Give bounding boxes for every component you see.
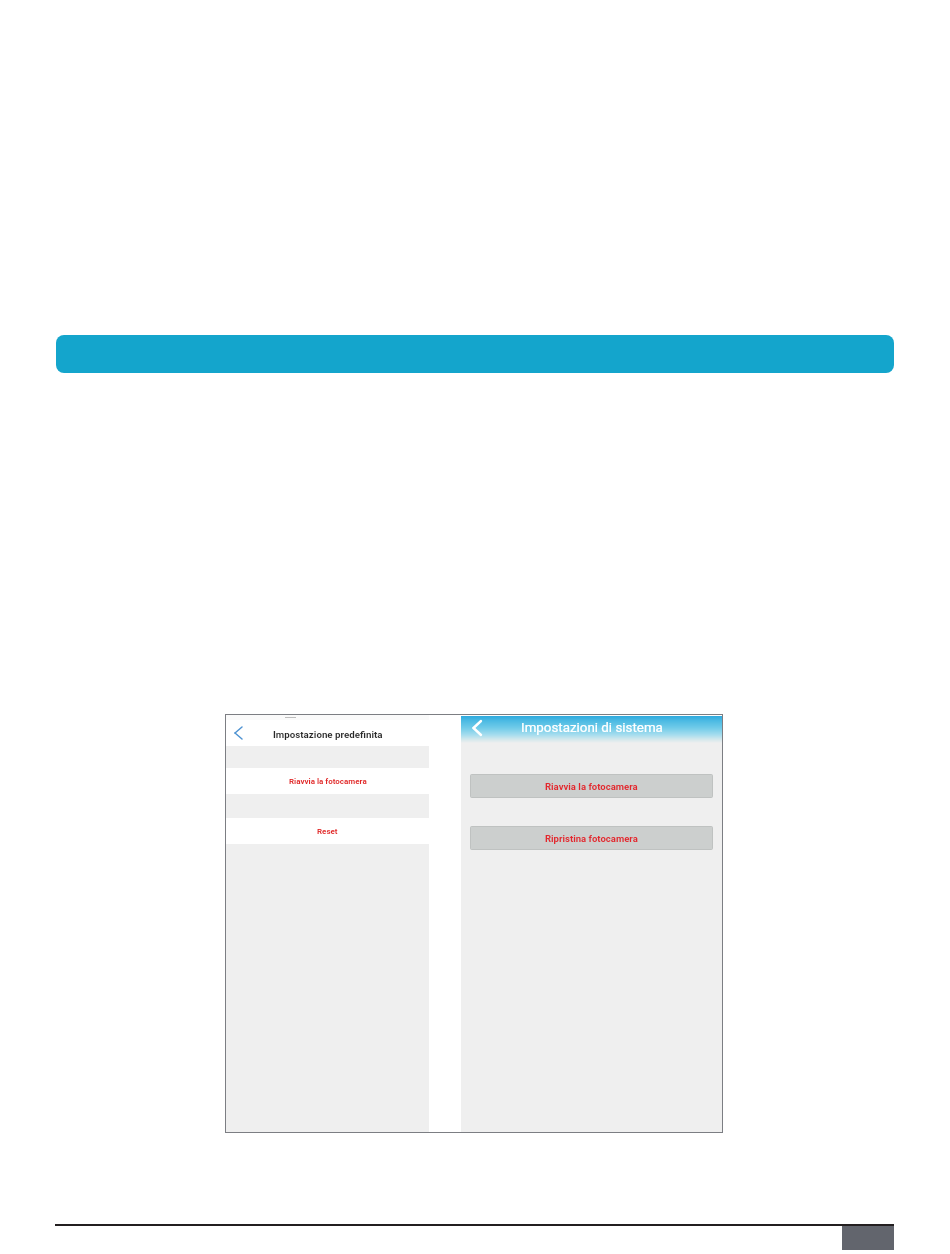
button[interactable]: Back (463, 716, 493, 742)
button[interactable]: Riavvia la fotocamera (226, 768, 429, 794)
button[interactable] (56, 335, 894, 373)
button[interactable]: Riavvia la fotocamera (470, 774, 713, 798)
staticText: Ripristina fotocamera (545, 833, 638, 844)
staticText: Riavvia la fotocamera (545, 781, 638, 792)
staticText: Impostazioni di sistema (521, 720, 663, 736)
staticText: Riavvia la fotocamera (289, 777, 367, 786)
button[interactable]: Back (226, 720, 252, 746)
button[interactable]: Ripristina fotocamera (470, 826, 713, 850)
staticText: Reset (317, 827, 338, 836)
button[interactable]: Reset (226, 818, 429, 844)
staticText: Impostazione predefinita (273, 729, 383, 740)
